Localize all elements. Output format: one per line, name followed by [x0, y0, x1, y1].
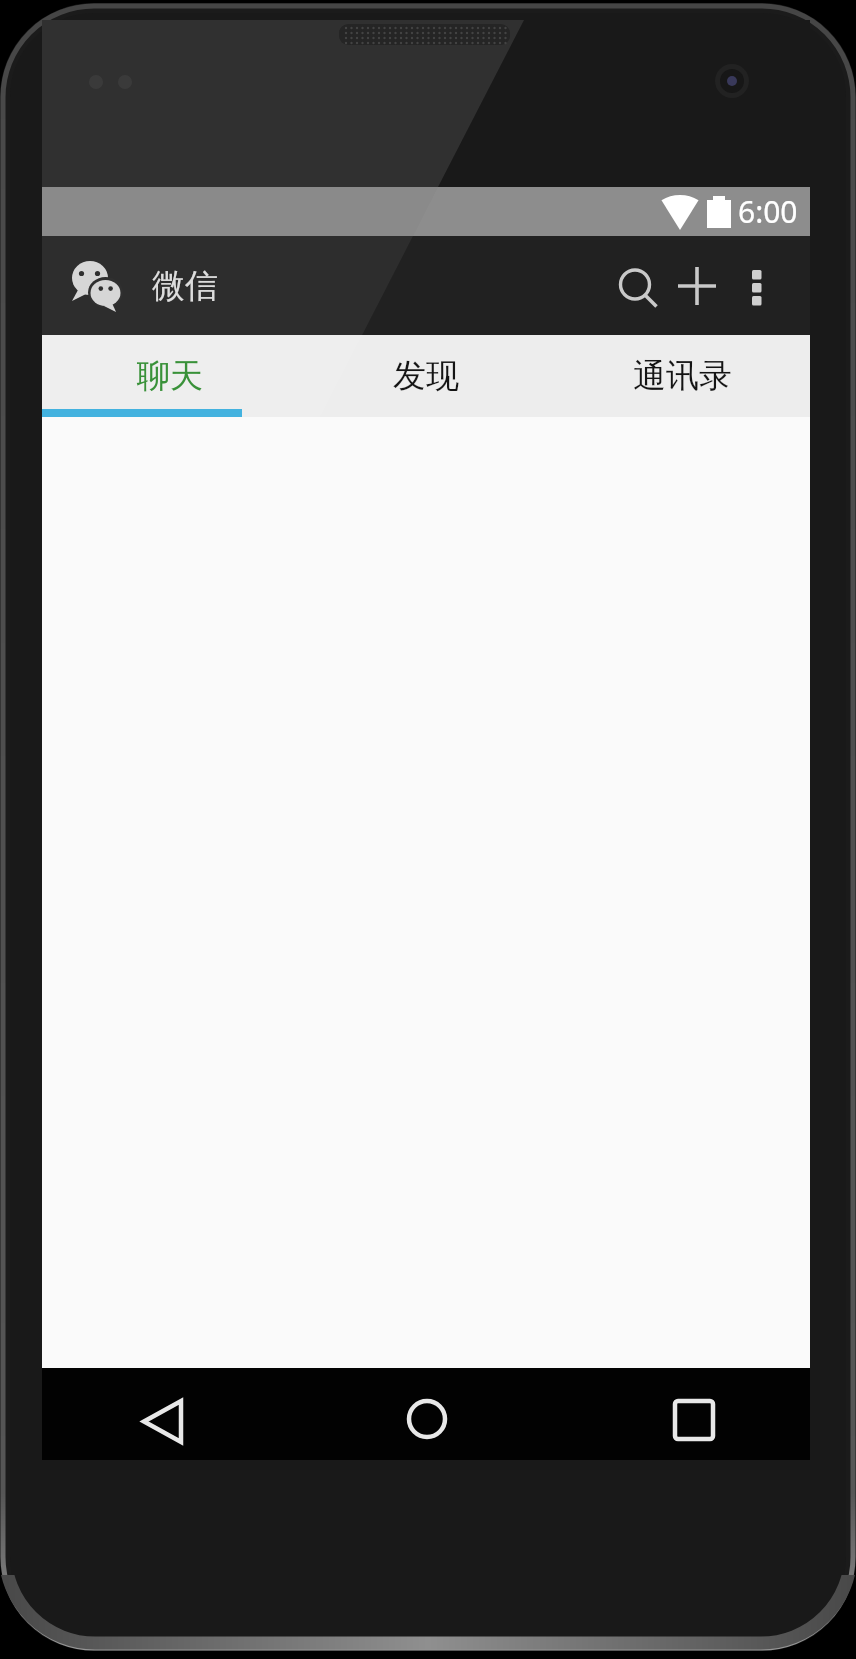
button[interactable]: [692, 236, 754, 335]
button[interactable]: [298, 1368, 554, 1460]
staticText: 聊天: [137, 355, 203, 397]
button[interactable]: [42, 1368, 298, 1460]
staticText: 6:00: [738, 191, 798, 232]
button[interactable]: [632, 236, 692, 335]
button[interactable]: [754, 236, 810, 335]
staticText: 发现: [393, 355, 459, 397]
button[interactable]: 聊天: [42, 335, 298, 417]
staticText: 通讯录: [633, 355, 732, 397]
button[interactable]: 微信: [42, 236, 218, 335]
button[interactable]: [554, 1368, 810, 1460]
button[interactable]: 发现: [298, 335, 554, 417]
staticText: 微信: [152, 265, 218, 307]
button[interactable]: 通讯录: [554, 335, 810, 417]
